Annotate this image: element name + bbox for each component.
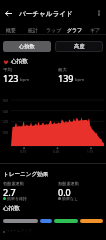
staticText: バーチャルライド bbox=[19, 10, 73, 18]
staticText: 最大 bbox=[58, 67, 67, 73]
staticText: 心拍数 bbox=[11, 58, 28, 65]
staticText: ギア bbox=[90, 27, 101, 33]
button[interactable]: 概要 bbox=[0, 24, 22, 35]
staticText: 160 bbox=[2, 98, 9, 103]
staticText: 140 bbox=[2, 109, 9, 114]
staticText: 無酸素運動 bbox=[58, 181, 79, 186]
staticText: トレーニング効果 bbox=[3, 171, 49, 178]
button[interactable]: ラップ bbox=[43, 24, 64, 35]
staticText: 有酸素運動 bbox=[3, 181, 24, 186]
button[interactable]: 統計 bbox=[22, 24, 43, 35]
staticText: ラップ bbox=[46, 27, 62, 33]
button[interactable]: Back bbox=[1, 6, 16, 21]
staticText: 139 bbox=[58, 72, 74, 84]
staticText: 高度 bbox=[74, 43, 85, 50]
staticText: 0.0 bbox=[58, 186, 71, 198]
staticText: 効果を維持 bbox=[7, 196, 28, 201]
button[interactable]: グラフ bbox=[64, 24, 85, 35]
staticText: 123 bbox=[3, 72, 19, 84]
button[interactable]: 心拍数 bbox=[3, 41, 51, 52]
staticText: 統計 bbox=[28, 27, 38, 33]
staticText: bpm bbox=[75, 77, 85, 83]
button[interactable]: More options bbox=[92, 6, 106, 20]
staticText: 概要 bbox=[6, 27, 16, 33]
button[interactable]: 高度 bbox=[55, 41, 103, 52]
button[interactable]: ギア bbox=[85, 24, 106, 35]
staticText: 0:45 bbox=[53, 150, 60, 154]
staticText: 0:15 bbox=[20, 150, 27, 154]
staticText: 平均 bbox=[3, 67, 12, 73]
staticText: 効果なし bbox=[62, 196, 79, 201]
staticText: bpm bbox=[20, 77, 30, 83]
staticText: 心拍数 bbox=[3, 205, 20, 212]
staticText: グラフ bbox=[67, 27, 83, 33]
staticText: 心拍数 bbox=[19, 43, 35, 50]
staticText: ウォームアップ bbox=[6, 229, 32, 234]
staticText: 120 bbox=[2, 119, 9, 124]
staticText: 1:15 bbox=[87, 150, 94, 154]
staticText: 2.7 bbox=[3, 186, 16, 198]
staticText: 100 bbox=[2, 130, 9, 135]
